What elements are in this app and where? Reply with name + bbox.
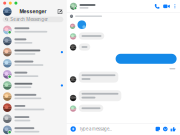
button[interactable] (0, 35, 66, 47)
button[interactable] (0, 69, 66, 80)
staticText: Search Messenger (10, 17, 48, 22)
button[interactable]: Send like (171, 126, 176, 132)
button[interactable] (0, 47, 66, 58)
button[interactable]: New message (57, 9, 63, 14)
button[interactable]: More options (173, 3, 177, 9)
button[interactable] (0, 91, 66, 102)
button[interactable] (0, 102, 66, 113)
staticText: Messenger (19, 9, 46, 14)
button[interactable]: Video call (163, 3, 170, 9)
staticText: Type a message... (79, 126, 112, 132)
button[interactable] (0, 124, 66, 135)
button[interactable] (0, 80, 66, 91)
button[interactable] (0, 24, 66, 35)
button[interactable]: Audio call (154, 3, 160, 9)
button[interactable]: Emoji (163, 127, 168, 131)
button[interactable] (0, 58, 66, 69)
button[interactable] (0, 113, 66, 124)
button[interactable]: Stickers (156, 127, 160, 131)
button[interactable]: Add attachment (70, 126, 76, 132)
